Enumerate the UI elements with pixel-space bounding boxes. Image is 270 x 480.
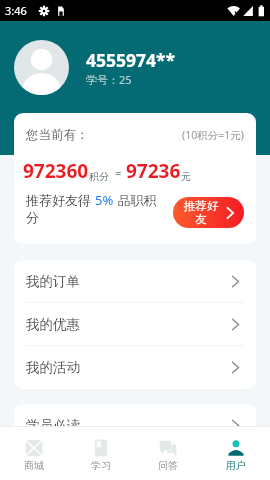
button[interactable]: 商城: [0, 426, 67, 480]
staticText: 分: [26, 209, 39, 225]
button[interactable]: 用户: [202, 426, 270, 480]
staticText: 学号：25: [86, 72, 132, 87]
staticText: (10积分=1元): [182, 128, 244, 142]
button[interactable]: 推荐好友: [173, 197, 244, 228]
staticText: 我的订单: [26, 273, 80, 290]
staticText: 3:46: [5, 3, 27, 18]
button[interactable]: 问答: [134, 426, 202, 480]
button[interactable]: 我的订单: [14, 260, 256, 303]
staticText: 您当前有：: [26, 127, 89, 143]
staticText: 学员必读: [26, 417, 80, 434]
staticText: 我的优惠: [26, 316, 80, 333]
staticText: 972360: [23, 158, 89, 184]
button[interactable]: 我的收藏: [14, 447, 256, 480]
staticText: 我的活动: [26, 359, 80, 376]
button[interactable]: 我的优惠: [14, 303, 256, 346]
staticText: 5%: [95, 191, 114, 209]
staticText: 4555974**: [86, 48, 176, 72]
staticText: 问答: [158, 459, 178, 472]
staticText: 积分: [89, 170, 109, 183]
button[interactable]: 学员必读: [14, 404, 256, 447]
staticText: 用户: [226, 459, 246, 472]
button[interactable]: 我的活动: [14, 346, 256, 389]
staticText: 元: [181, 170, 191, 183]
button[interactable]: 学习: [67, 426, 134, 480]
staticText: 推荐好友: [182, 199, 220, 226]
staticText: 学习: [91, 459, 111, 472]
staticText: 97236: [126, 158, 181, 184]
staticText: =: [115, 165, 122, 180]
staticText: 商城: [24, 459, 44, 472]
staticText: 品职积: [114, 191, 157, 209]
staticText: 我的收藏: [26, 460, 80, 477]
staticText: 推荐好友得: [26, 191, 95, 209]
